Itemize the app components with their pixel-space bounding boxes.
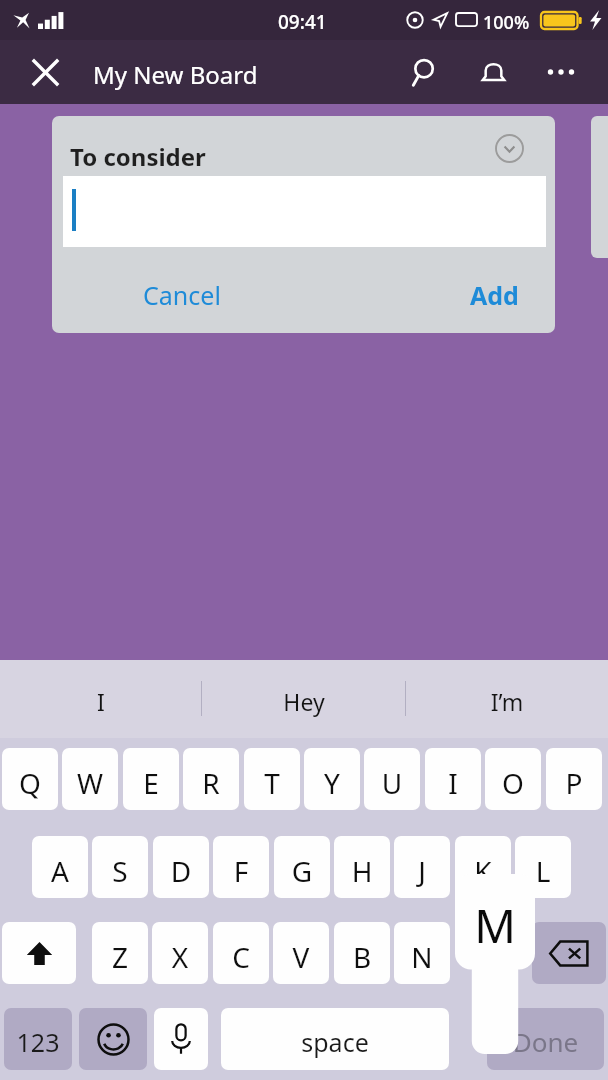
button[interactable]: Add bbox=[450, 264, 555, 322]
staticText: N bbox=[394, 938, 450, 976]
staticText: O bbox=[485, 764, 541, 802]
staticText: V bbox=[273, 938, 329, 976]
staticText: Add bbox=[470, 278, 519, 312]
staticText: J bbox=[394, 852, 450, 890]
staticText: W bbox=[62, 764, 118, 802]
staticText: R bbox=[183, 764, 239, 802]
staticText: I bbox=[425, 764, 481, 802]
button[interactable]: B bbox=[334, 922, 390, 984]
staticText: P bbox=[546, 764, 602, 802]
button[interactable]: space bbox=[221, 1008, 449, 1070]
staticText: S bbox=[92, 852, 148, 890]
button[interactable]: I bbox=[425, 748, 481, 810]
button[interactable] bbox=[591, 116, 608, 258]
staticText: A bbox=[32, 852, 88, 890]
staticText: Hey bbox=[203, 686, 405, 717]
staticText: I’m bbox=[406, 686, 608, 717]
button[interactable]: J bbox=[394, 836, 450, 898]
staticText: F bbox=[213, 852, 269, 890]
staticText: Z bbox=[92, 938, 148, 976]
button[interactable]: Q bbox=[2, 748, 58, 810]
staticText: My New Board bbox=[93, 58, 258, 91]
button[interactable]: Y bbox=[304, 748, 360, 810]
button[interactable]: Cancel bbox=[52, 264, 262, 322]
button[interactable]: Voice input bbox=[154, 1008, 208, 1070]
staticText: L bbox=[515, 852, 571, 890]
staticText: Q bbox=[2, 764, 58, 802]
button[interactable]: More options bbox=[535, 46, 587, 98]
button[interactable]: F bbox=[213, 836, 269, 898]
staticText: To consider bbox=[70, 140, 206, 173]
button[interactable]: L bbox=[515, 836, 571, 898]
button[interactable]: U bbox=[364, 748, 420, 810]
button[interactable]: N bbox=[394, 922, 450, 984]
button[interactable]: G bbox=[274, 836, 330, 898]
button[interactable]: Z bbox=[92, 922, 148, 984]
button[interactable]: Collapse list bbox=[482, 121, 536, 175]
staticText: 09:41 bbox=[278, 9, 327, 35]
button[interactable]: 123 bbox=[4, 1008, 72, 1070]
button[interactable]: O bbox=[485, 748, 541, 810]
button[interactable]: Done bbox=[487, 1008, 604, 1070]
button[interactable]: T bbox=[244, 748, 300, 810]
staticText: C bbox=[213, 938, 269, 976]
button[interactable]: V bbox=[273, 922, 329, 984]
staticText: H bbox=[334, 852, 390, 890]
staticText: 123 bbox=[4, 1025, 72, 1059]
button[interactable] bbox=[63, 176, 546, 247]
button[interactable]: X bbox=[152, 922, 208, 984]
staticText: I bbox=[0, 686, 202, 717]
staticText: D bbox=[153, 852, 209, 890]
button[interactable]: P bbox=[546, 748, 602, 810]
button[interactable]: C bbox=[213, 922, 269, 984]
button[interactable]: Notifications bbox=[467, 46, 519, 98]
button[interactable]: Search bbox=[399, 46, 451, 98]
button[interactable]: Shift bbox=[2, 922, 76, 984]
staticText: 100% bbox=[483, 10, 530, 35]
button[interactable]: Backspace bbox=[532, 922, 606, 984]
button[interactable]: Emoji bbox=[79, 1008, 147, 1070]
staticText: Y bbox=[304, 764, 360, 802]
staticText: X bbox=[152, 938, 208, 976]
button[interactable]: H bbox=[334, 836, 390, 898]
staticText: M bbox=[455, 894, 535, 957]
staticText: K bbox=[455, 852, 511, 890]
button[interactable]: D bbox=[153, 836, 209, 898]
staticText: Cancel bbox=[143, 278, 221, 312]
staticText: G bbox=[274, 852, 330, 890]
button[interactable]: R bbox=[183, 748, 239, 810]
staticText: E bbox=[123, 764, 179, 802]
staticText: Done bbox=[487, 1024, 604, 1059]
staticText: space bbox=[221, 1025, 449, 1059]
button[interactable]: S bbox=[92, 836, 148, 898]
button[interactable]: K bbox=[455, 836, 511, 898]
staticText: B bbox=[334, 938, 390, 976]
button[interactable]: E bbox=[123, 748, 179, 810]
staticText: T bbox=[244, 764, 300, 802]
staticText: U bbox=[364, 764, 420, 802]
button[interactable]: Close bbox=[19, 46, 71, 98]
button[interactable]: A bbox=[32, 836, 88, 898]
button[interactable]: M bbox=[455, 874, 535, 1054]
button[interactable]: W bbox=[62, 748, 118, 810]
